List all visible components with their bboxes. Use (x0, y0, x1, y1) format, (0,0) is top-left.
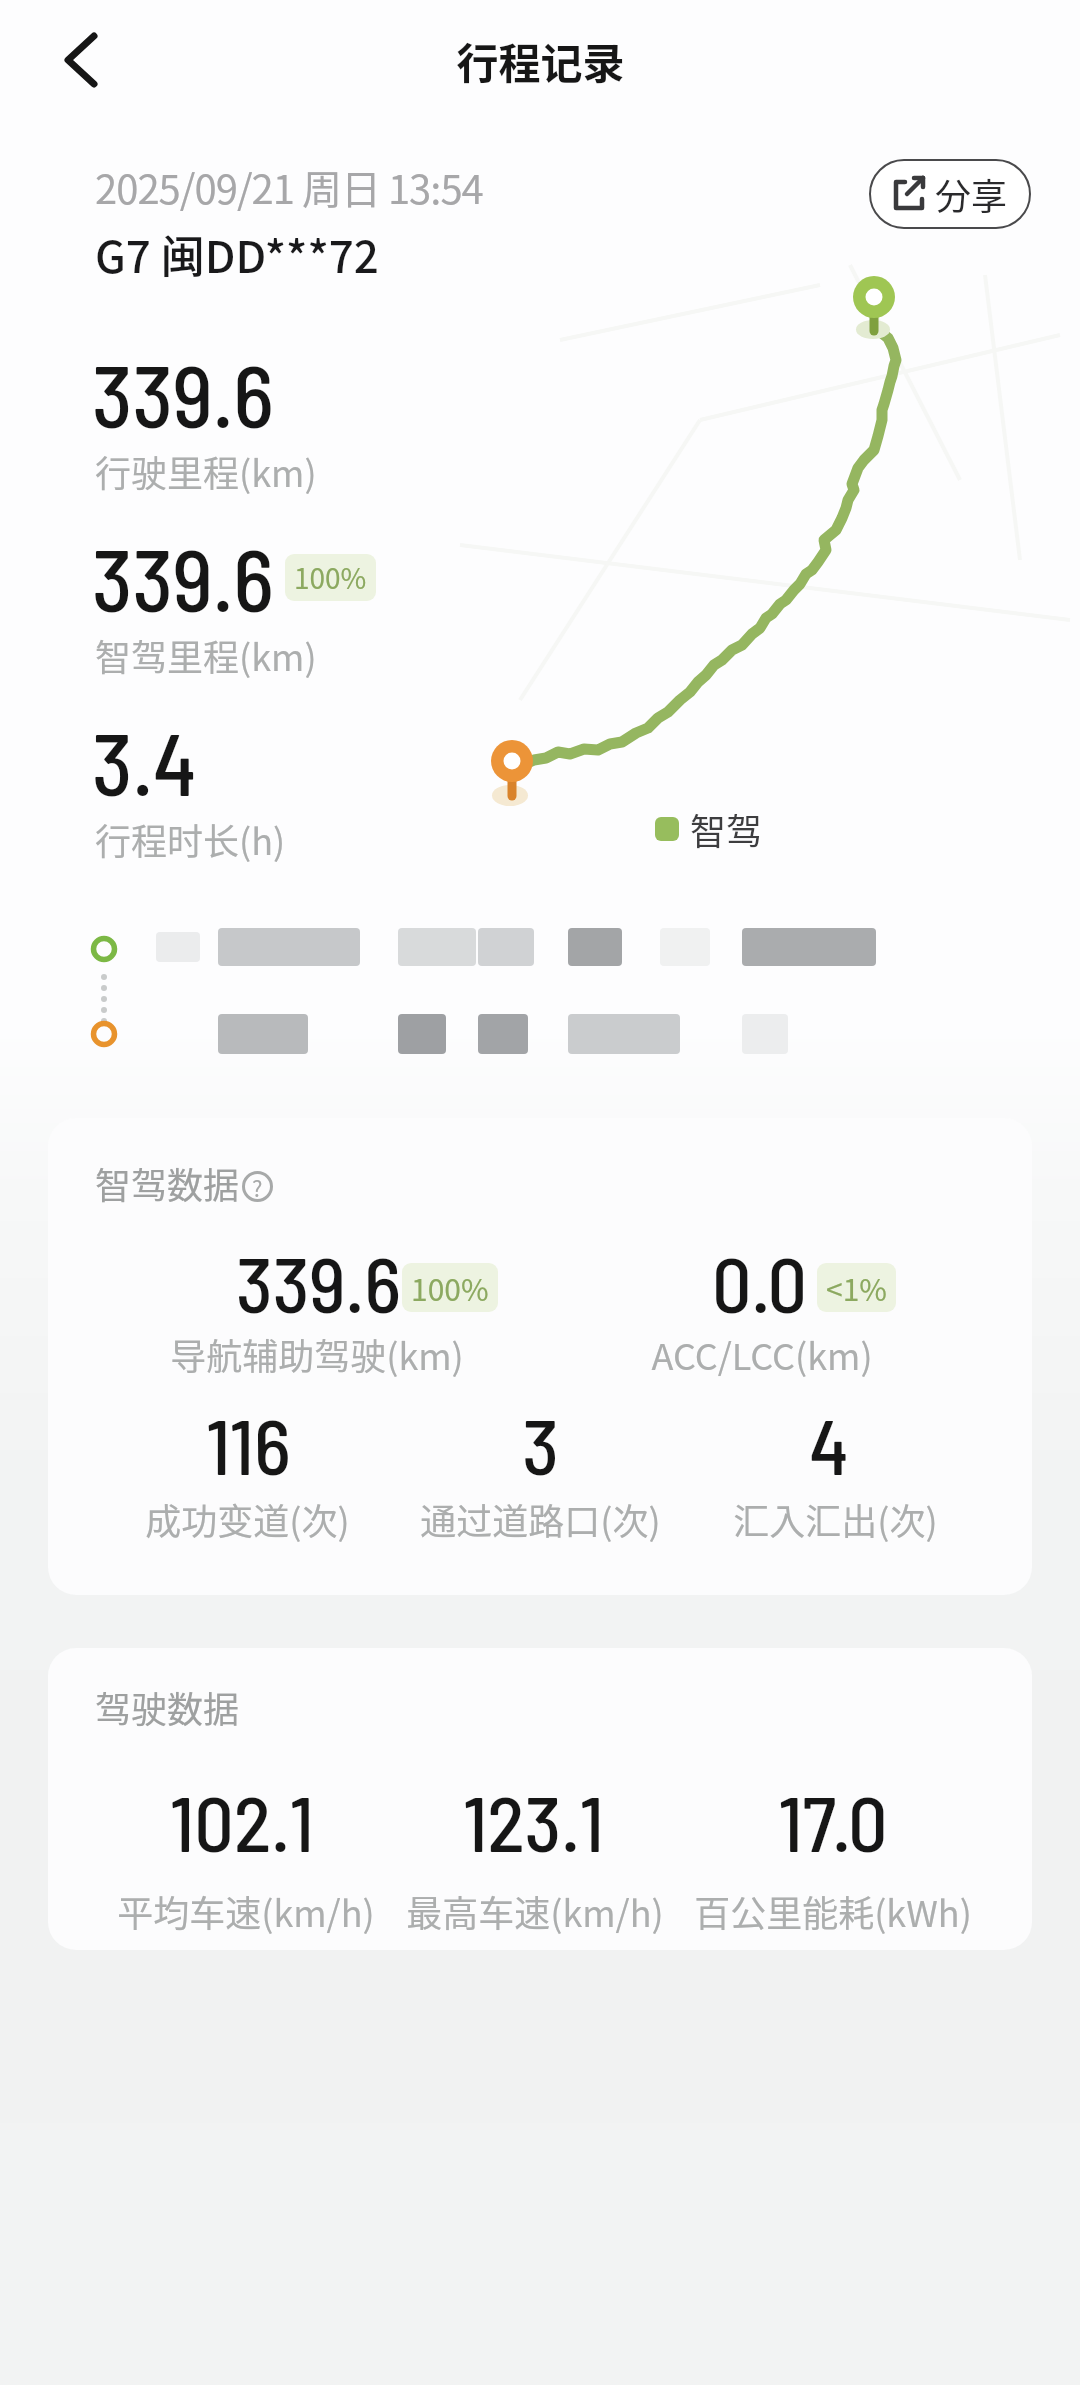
staticText: 339.6 (92, 342, 274, 445)
staticText: 123.1 (463, 1774, 604, 1868)
button[interactable]: 分享 (869, 159, 1031, 229)
staticText: 2025/09/21 周日 13:54 (95, 158, 483, 216)
staticText: 通过道路口(次) (420, 1493, 661, 1545)
staticText: 行程记录 (456, 30, 625, 91)
button[interactable]: ? (242, 1171, 273, 1202)
staticText: 行驶里程(km) (95, 445, 317, 497)
staticText: 339.6 (236, 1235, 401, 1329)
staticText: 116 (206, 1397, 291, 1491)
staticText: 智驾里程(km) (95, 629, 317, 681)
staticText: 智驾 (690, 803, 763, 855)
staticText: 平均车速(km/h) (117, 1885, 375, 1937)
staticText: 102.1 (170, 1774, 314, 1868)
staticText: 339.6 (92, 526, 274, 629)
staticText: 导航辅助驾驶(km) (170, 1328, 464, 1380)
staticText: 智驾数据 (95, 1157, 240, 1209)
staticText: 汇入汇出(次) (733, 1493, 938, 1545)
staticText: ? (252, 1171, 263, 1202)
staticText: 100% (294, 557, 367, 598)
button[interactable] (40, 18, 130, 104)
staticText: 4 (809, 1397, 849, 1491)
staticText: 驾驶数据 (95, 1681, 240, 1733)
staticText: 17.0 (778, 1774, 888, 1868)
staticText: 最高车速(km/h) (406, 1885, 664, 1937)
staticText: ACC/LCC(km) (651, 1328, 873, 1380)
staticText: 百公里能耗(kWh) (694, 1885, 972, 1937)
staticText: 成功变道(次) (145, 1493, 350, 1545)
staticText: 0.0 (712, 1235, 807, 1329)
staticText: 100% (411, 1266, 489, 1309)
staticText: 行程时长(h) (95, 813, 286, 865)
staticText: 3.4 (92, 710, 197, 813)
staticText: <1% (826, 1266, 887, 1309)
staticText: G7 闽DD***72 (95, 222, 379, 286)
staticText: 分享 (935, 168, 1008, 220)
staticText: 3 (522, 1397, 559, 1491)
